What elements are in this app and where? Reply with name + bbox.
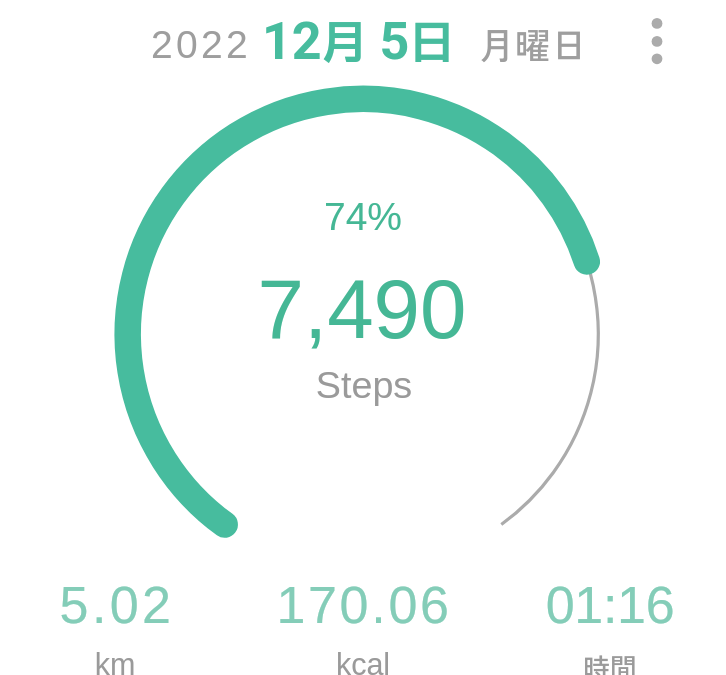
staticText: 2022	[151, 23, 251, 67]
staticText: km	[0, 647, 235, 675]
staticText: 74%	[0, 195, 726, 239]
staticText: 170.06	[244, 576, 484, 634]
staticText: 時間	[490, 647, 726, 675]
staticText: 12月 5日	[262, 11, 455, 79]
staticText: 月曜日	[479, 17, 588, 69]
button[interactable]: 170.06	[243, 576, 483, 675]
staticText: kcal	[243, 647, 483, 675]
staticText: Steps	[1, 364, 726, 406]
staticText: 7,490	[0, 262, 725, 355]
button[interactable]: More options	[626, 13, 688, 75]
button[interactable]: 5.02	[0, 576, 235, 675]
staticText: 01:16	[490, 576, 726, 634]
staticText: 5.02	[0, 576, 237, 634]
button[interactable]: 01:16	[490, 576, 726, 675]
